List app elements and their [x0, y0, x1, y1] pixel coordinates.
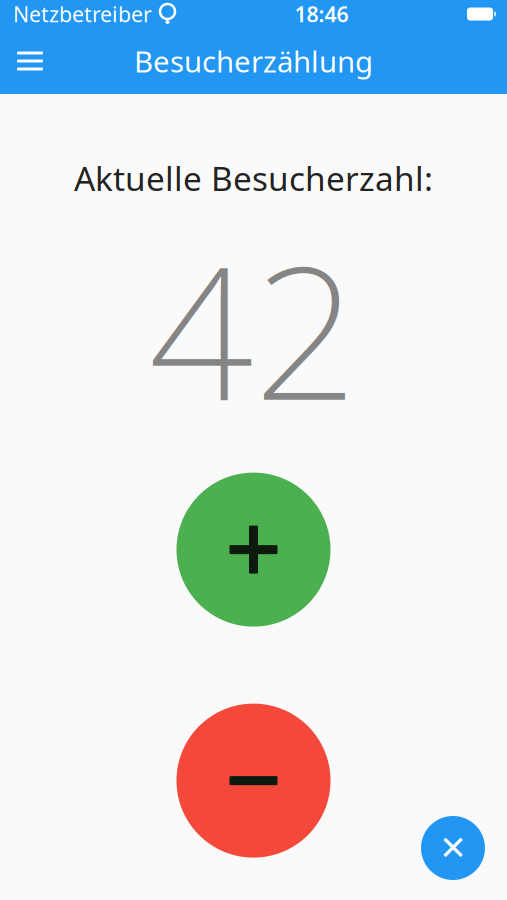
button[interactable]: Besucher abziehen [176, 704, 330, 858]
staticText: Netzbetreiber [13, 0, 152, 28]
staticText: Aktuelle Besucherzahl: [74, 156, 433, 200]
button[interactable]: Schließen [417, 812, 489, 884]
staticText: ✕ [439, 829, 467, 867]
button[interactable]: Menü [0, 37, 60, 85]
staticText: 18:46 [294, 0, 348, 28]
staticText: Besucherzählung [134, 41, 373, 80]
staticText: 42 [148, 206, 358, 451]
button[interactable]: Besucher hinzufügen [176, 473, 330, 627]
